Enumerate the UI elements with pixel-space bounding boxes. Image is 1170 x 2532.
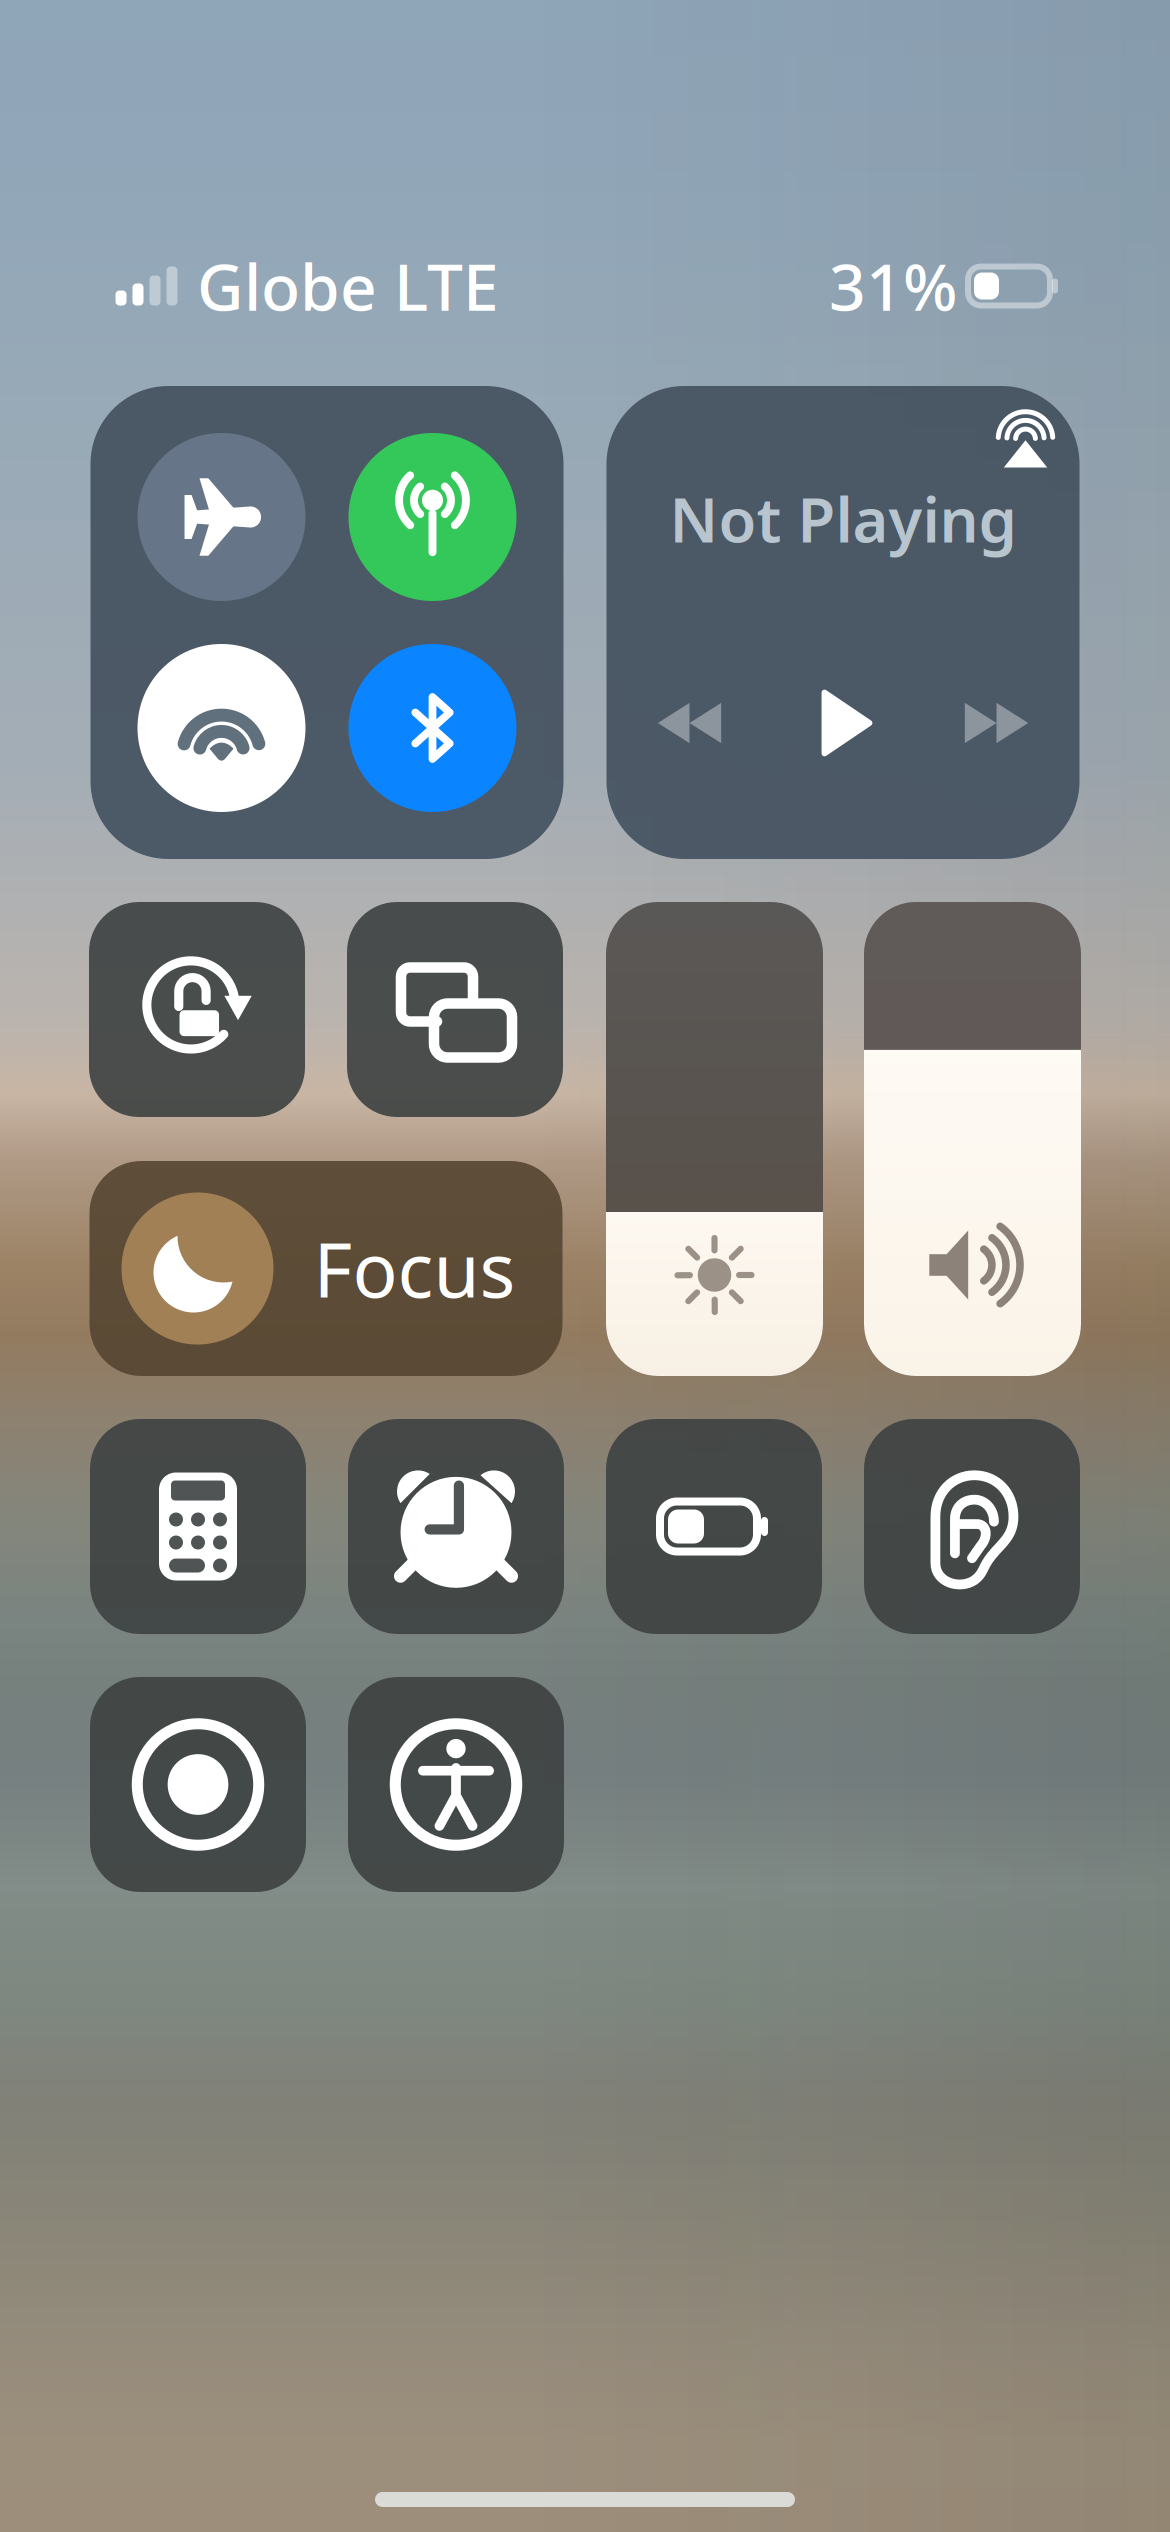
button[interactable]: Screen Mirroring <box>347 902 563 1117</box>
staticText: Globe LTE <box>197 243 499 328</box>
button[interactable]: AirPlay <box>994 386 1079 470</box>
button[interactable]: Play <box>810 690 876 756</box>
button[interactable]: Focus <box>89 1161 562 1376</box>
button[interactable]: Rotation Lock <box>89 902 305 1117</box>
button[interactable]: Volume <box>864 902 1081 1376</box>
button[interactable]: Low Power Mode <box>606 1419 822 1634</box>
button[interactable]: Previous Track <box>653 687 725 759</box>
button[interactable]: Calculator <box>90 1419 306 1634</box>
button[interactable]: Wi-Fi <box>137 644 305 812</box>
button[interactable]: Airplane Mode <box>137 433 305 601</box>
button[interactable]: Cellular Data <box>348 433 516 601</box>
button[interactable]: Brightness <box>606 902 823 1376</box>
button[interactable]: Hearing <box>864 1419 1080 1634</box>
button[interactable]: Next Track <box>960 687 1032 759</box>
button[interactable]: Alarm <box>348 1419 564 1634</box>
button[interactable]: Bluetooth <box>348 644 516 812</box>
staticText: Not Playing <box>669 478 1016 559</box>
staticText: 31% <box>829 243 958 328</box>
staticText: Focus <box>313 1219 515 1318</box>
button[interactable]: Accessibility Shortcuts <box>348 1677 564 1892</box>
button[interactable]: Screen Recording <box>90 1677 306 1892</box>
